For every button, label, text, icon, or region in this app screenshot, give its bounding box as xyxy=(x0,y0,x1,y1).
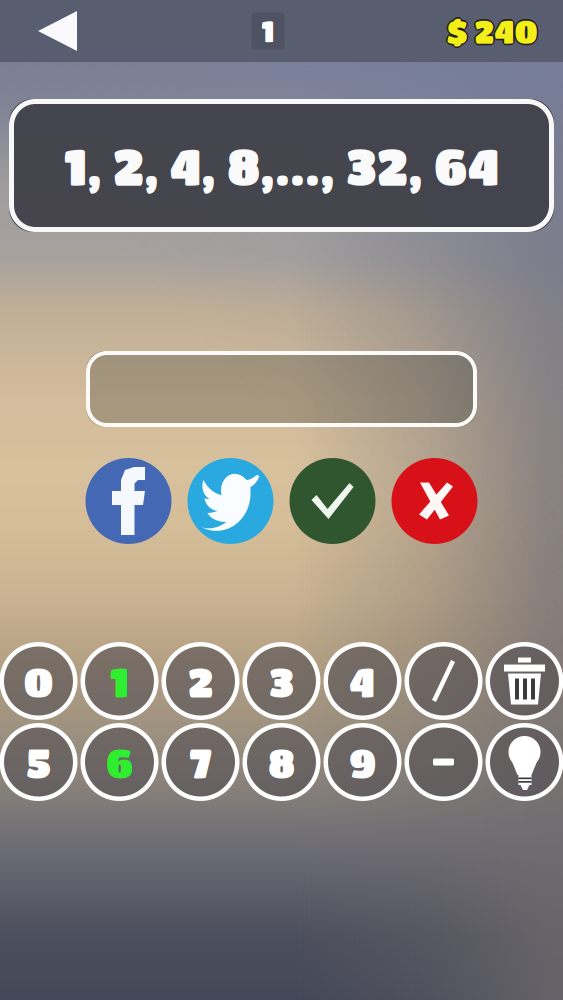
staticText: 6 xyxy=(106,738,133,786)
button[interactable]: Minus xyxy=(404,723,482,801)
staticText: 0 xyxy=(23,657,53,705)
staticText: $ 240 xyxy=(446,13,537,49)
button[interactable]: Divide xyxy=(404,642,482,720)
staticText: 1 xyxy=(110,657,129,705)
button[interactable]: Delete xyxy=(485,642,563,720)
button[interactable]: Hint xyxy=(485,723,563,801)
staticText: 2 xyxy=(188,657,213,705)
button[interactable]: Share on Facebook xyxy=(85,458,171,544)
button[interactable]: 6 xyxy=(80,723,158,801)
staticText: $ 240 xyxy=(448,13,539,49)
staticText: 8 xyxy=(268,738,295,786)
button[interactable]: Share on Twitter xyxy=(187,458,273,544)
button[interactable]: 2 xyxy=(161,642,239,720)
staticText: 7 xyxy=(189,738,211,786)
button[interactable]: Submit answer xyxy=(289,458,375,544)
button[interactable]: $ 240 xyxy=(420,0,563,62)
staticText: 3 xyxy=(269,657,294,705)
button[interactable]: 9 xyxy=(323,723,401,801)
button[interactable]: 1 xyxy=(80,642,158,720)
button[interactable]: 3 xyxy=(242,642,320,720)
staticText: $ 240 xyxy=(445,13,536,49)
staticText: 5 xyxy=(26,738,51,786)
button[interactable]: Clear answer xyxy=(391,458,477,544)
staticText: 9 xyxy=(349,738,376,786)
staticText: 1, 2, 4, 8,..., 32, 64 xyxy=(64,136,499,194)
staticText: $ 240 xyxy=(446,14,537,51)
button[interactable]: 4 xyxy=(323,642,401,720)
button[interactable]: 8 xyxy=(242,723,320,801)
staticText: 4 xyxy=(349,657,375,705)
staticText: $ 240 xyxy=(446,11,537,48)
button[interactable]: 0 xyxy=(0,642,77,720)
button[interactable]: 5 xyxy=(0,723,77,801)
button[interactable]: Back xyxy=(0,0,115,62)
button[interactable]: 7 xyxy=(161,723,239,801)
staticText: 1 xyxy=(261,15,274,47)
